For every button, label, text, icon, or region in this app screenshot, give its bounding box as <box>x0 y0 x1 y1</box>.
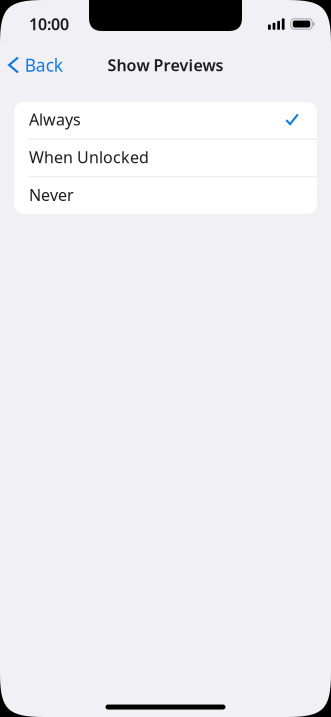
staticText: Never <box>29 184 74 205</box>
staticText: Back <box>25 53 63 76</box>
button[interactable]: When Unlocked <box>14 140 317 176</box>
button[interactable]: Back <box>0 48 63 81</box>
staticText: 10:00 <box>29 13 69 35</box>
button[interactable]: Always <box>14 102 317 139</box>
staticText: Show Previews <box>107 54 223 76</box>
staticText: Always <box>29 109 81 130</box>
button[interactable]: Never <box>14 177 317 214</box>
staticText: When Unlocked <box>29 146 149 168</box>
